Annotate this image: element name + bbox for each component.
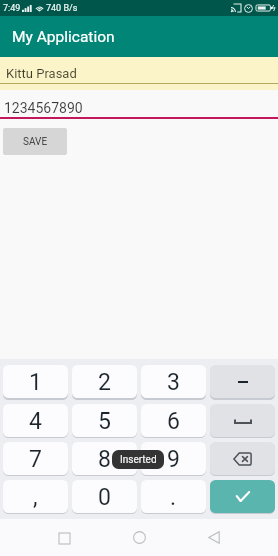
button[interactable]: 1	[3, 365, 68, 398]
button[interactable]: 6	[141, 404, 206, 437]
button[interactable]: .	[141, 480, 206, 513]
button[interactable]: Recents	[53, 527, 75, 549]
staticText: Kittu Prasad	[6, 66, 77, 81]
button[interactable]: SAVE	[3, 128, 67, 155]
button[interactable]: 0	[72, 480, 137, 513]
staticText: 9	[167, 446, 180, 473]
staticText: .	[170, 484, 177, 511]
button[interactable]: 8	[72, 442, 137, 475]
button[interactable]: ,	[3, 480, 68, 513]
staticText: 3	[167, 369, 180, 396]
staticText: 5	[98, 408, 111, 435]
staticText: 6	[167, 408, 180, 435]
staticText: 740 B/s	[46, 3, 78, 14]
staticText: 2	[98, 369, 111, 396]
button[interactable]: Home	[128, 526, 150, 548]
staticText: 1	[29, 369, 42, 396]
button[interactable]: Submit	[210, 480, 275, 513]
staticText: My Application	[12, 28, 115, 46]
button[interactable]: 3	[141, 365, 206, 398]
button[interactable]: 2	[72, 365, 137, 398]
button[interactable]: Backspace	[210, 442, 275, 475]
button[interactable]: 5	[72, 404, 137, 437]
button[interactable]: 1234567890	[0, 90, 278, 119]
button[interactable]: Back	[203, 526, 225, 548]
staticText: 7:49	[3, 3, 21, 14]
button[interactable]: 9	[141, 442, 206, 475]
staticText: Inserted	[120, 454, 157, 466]
staticText: 4	[29, 408, 42, 435]
button[interactable]: Kittu Prasad	[0, 57, 278, 90]
staticText: 8	[98, 446, 111, 473]
button[interactable]: 4	[3, 404, 68, 437]
button[interactable]: Minus	[210, 365, 275, 398]
button[interactable]: My Application	[0, 16, 278, 57]
staticText: 0	[98, 484, 111, 511]
staticText: SAVE	[23, 136, 48, 148]
button[interactable]: 7	[3, 442, 68, 475]
staticText: 7	[29, 446, 42, 473]
staticText: ,	[33, 484, 38, 511]
button[interactable]: Space	[210, 404, 275, 437]
staticText: 1234567890	[4, 100, 83, 116]
